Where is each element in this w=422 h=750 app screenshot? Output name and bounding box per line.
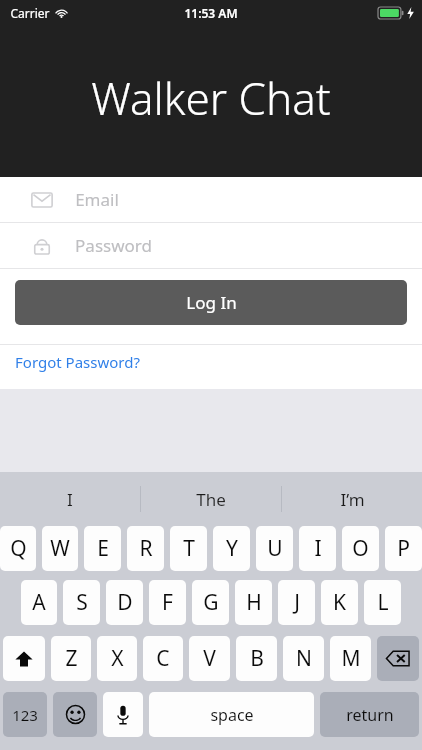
button[interactable]: L <box>364 580 401 625</box>
staticText: P <box>397 534 410 563</box>
staticText: The <box>196 488 226 511</box>
button[interactable]: Password <box>0 223 422 268</box>
staticText: R <box>139 534 153 563</box>
staticText: Log In <box>186 291 237 314</box>
button[interactable]: 123 <box>3 692 47 737</box>
staticText: M <box>341 644 361 673</box>
staticText: G <box>203 588 219 617</box>
staticText: O <box>352 534 369 563</box>
staticText: Q <box>10 534 27 563</box>
staticText: A <box>32 588 46 617</box>
button[interactable]: H <box>235 580 272 625</box>
button[interactable]: return <box>320 692 419 737</box>
button[interactable]: P <box>385 526 422 571</box>
button[interactable]: B <box>236 636 277 681</box>
staticText: Y <box>226 534 238 563</box>
button[interactable]: Emoji <box>53 692 97 737</box>
staticText: F <box>162 588 173 617</box>
button[interactable]: R <box>127 526 164 571</box>
staticText: Walker Chat <box>91 68 331 128</box>
button[interactable]: F <box>149 580 186 625</box>
button[interactable]: Dictation <box>103 692 143 737</box>
button[interactable]: Y <box>213 526 250 571</box>
button[interactable]: Log In <box>15 280 407 325</box>
button[interactable]: Z <box>51 636 91 681</box>
button[interactable]: space <box>149 692 314 737</box>
staticText: V <box>203 644 216 673</box>
button[interactable]: U <box>256 526 293 571</box>
staticText: N <box>296 644 312 673</box>
button[interactable]: N <box>283 636 324 681</box>
button[interactable]: I’m <box>282 472 422 526</box>
staticText: J <box>294 588 300 617</box>
button[interactable]: I <box>0 472 140 526</box>
staticText: B <box>250 644 264 673</box>
button[interactable]: Forgot Password? <box>0 345 422 379</box>
button[interactable]: D <box>106 580 143 625</box>
button[interactable]: T <box>170 526 207 571</box>
staticText: Forgot Password? <box>15 352 140 372</box>
staticText: Z <box>65 644 78 673</box>
staticText: W <box>50 534 70 563</box>
staticText: T <box>183 534 195 563</box>
staticText: I <box>67 488 73 511</box>
staticText: Carrier <box>10 5 50 21</box>
staticText: D <box>117 588 133 617</box>
button[interactable]: K <box>321 580 358 625</box>
button[interactable]: Q <box>0 526 36 571</box>
staticText: return <box>346 704 394 726</box>
staticText: space <box>210 704 254 726</box>
button[interactable]: M <box>330 636 371 681</box>
staticText: C <box>156 644 170 673</box>
button[interactable]: Shift <box>3 636 45 681</box>
button[interactable]: Email <box>0 177 422 222</box>
button[interactable]: X <box>97 636 137 681</box>
button[interactable]: A <box>21 580 57 625</box>
staticText: Email <box>75 188 119 211</box>
button[interactable]: The <box>141 472 281 526</box>
staticText: H <box>246 588 262 617</box>
button[interactable]: C <box>143 636 183 681</box>
button[interactable]: O <box>342 526 379 571</box>
button[interactable]: I <box>299 526 336 571</box>
button[interactable]: V <box>189 636 230 681</box>
staticText: U <box>267 534 283 563</box>
staticText: 123 <box>12 705 38 725</box>
button[interactable]: G <box>192 580 229 625</box>
button[interactable]: S <box>63 580 100 625</box>
staticText: L <box>377 588 389 617</box>
button[interactable]: E <box>84 526 121 571</box>
staticText: Password <box>75 234 152 257</box>
staticText: 11:53 AM <box>184 5 238 21</box>
button[interactable]: W <box>42 526 78 571</box>
staticText: I <box>314 534 322 563</box>
staticText: I’m <box>340 488 365 511</box>
button[interactable]: J <box>278 580 315 625</box>
staticText: E <box>97 534 109 563</box>
staticText: K <box>333 588 346 617</box>
button[interactable]: Backspace <box>377 636 419 681</box>
staticText: X <box>111 644 124 673</box>
staticText: S <box>76 588 88 617</box>
